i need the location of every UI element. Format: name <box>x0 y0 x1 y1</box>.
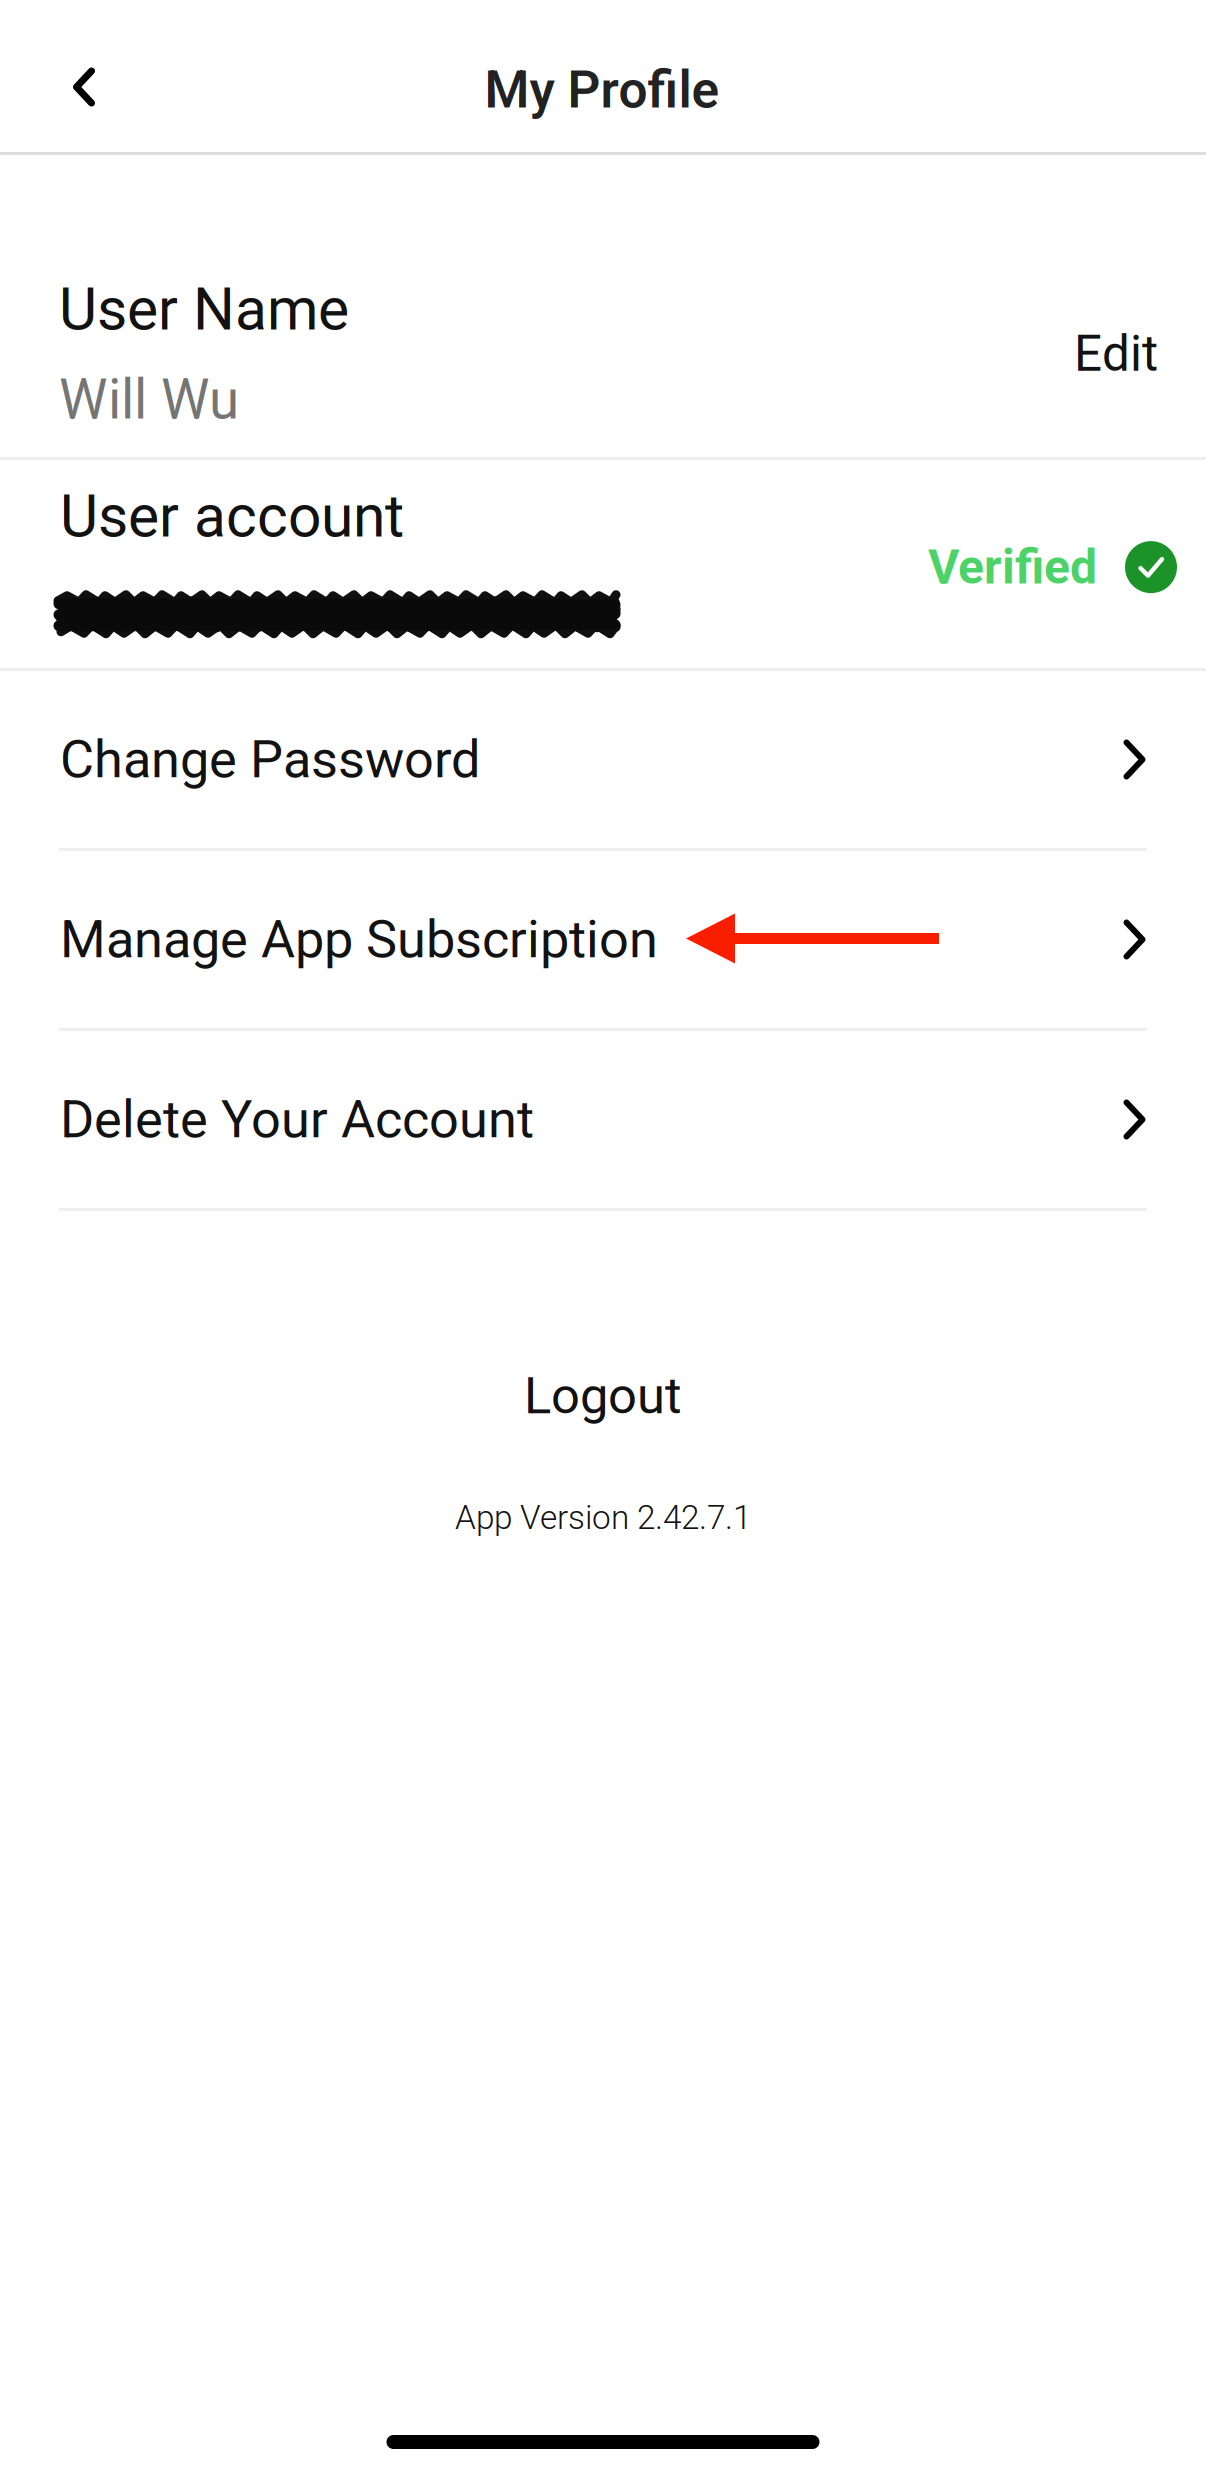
staticText: Verified <box>928 539 1097 595</box>
staticText: My Profile <box>484 60 719 120</box>
staticText: User account <box>60 482 404 551</box>
button[interactable]: Logout <box>0 1368 1206 1424</box>
button[interactable]: Change Password <box>0 671 1206 848</box>
staticText: User Name <box>59 275 349 344</box>
staticText: Delete Your Account <box>60 1089 534 1150</box>
staticText: App Version 2.42.7.1 <box>455 1498 751 1537</box>
button[interactable]: Manage App Subscription <box>0 851 1206 1028</box>
button[interactable]: Delete Your Account <box>0 1031 1206 1208</box>
staticText: Manage App Subscription <box>60 909 658 970</box>
staticText: Edit <box>1074 325 1158 383</box>
staticText: Change Password <box>60 729 480 790</box>
staticText: Will Wu <box>59 368 239 432</box>
staticText: Logout <box>524 1366 682 1426</box>
button[interactable]: Edit <box>1074 275 1158 383</box>
button[interactable]: Back <box>37 32 133 142</box>
